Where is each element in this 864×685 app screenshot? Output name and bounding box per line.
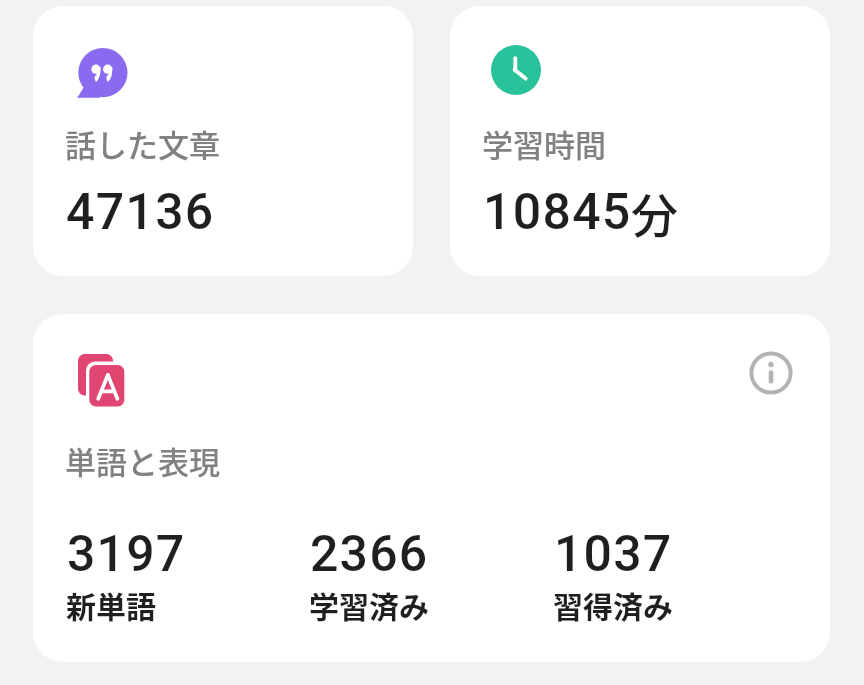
staticText: 3197 xyxy=(67,525,186,584)
button[interactable]: Info xyxy=(747,349,795,397)
button[interactable]: Study time xyxy=(450,6,830,276)
staticText: 学習時間 xyxy=(482,121,606,166)
staticText: 分 xyxy=(631,178,678,246)
staticText: 2366 xyxy=(310,525,429,584)
staticText: 10845 xyxy=(483,183,632,242)
button[interactable]: Words and phrases xyxy=(33,314,830,662)
staticText: 話した文章 xyxy=(65,121,220,166)
button[interactable]: 3197 xyxy=(33,525,277,615)
staticText: 47136 xyxy=(66,183,215,242)
button[interactable]: 1037 xyxy=(521,525,765,615)
staticText: 学習済み xyxy=(309,583,429,626)
button[interactable]: Spoken sentences xyxy=(33,6,413,276)
staticText: 単語と表現 xyxy=(65,438,220,483)
staticText: 新単語 xyxy=(66,583,156,626)
staticText: 1037 xyxy=(554,525,673,584)
staticText: 習得済み xyxy=(553,583,673,626)
button[interactable]: 2366 xyxy=(277,525,521,615)
